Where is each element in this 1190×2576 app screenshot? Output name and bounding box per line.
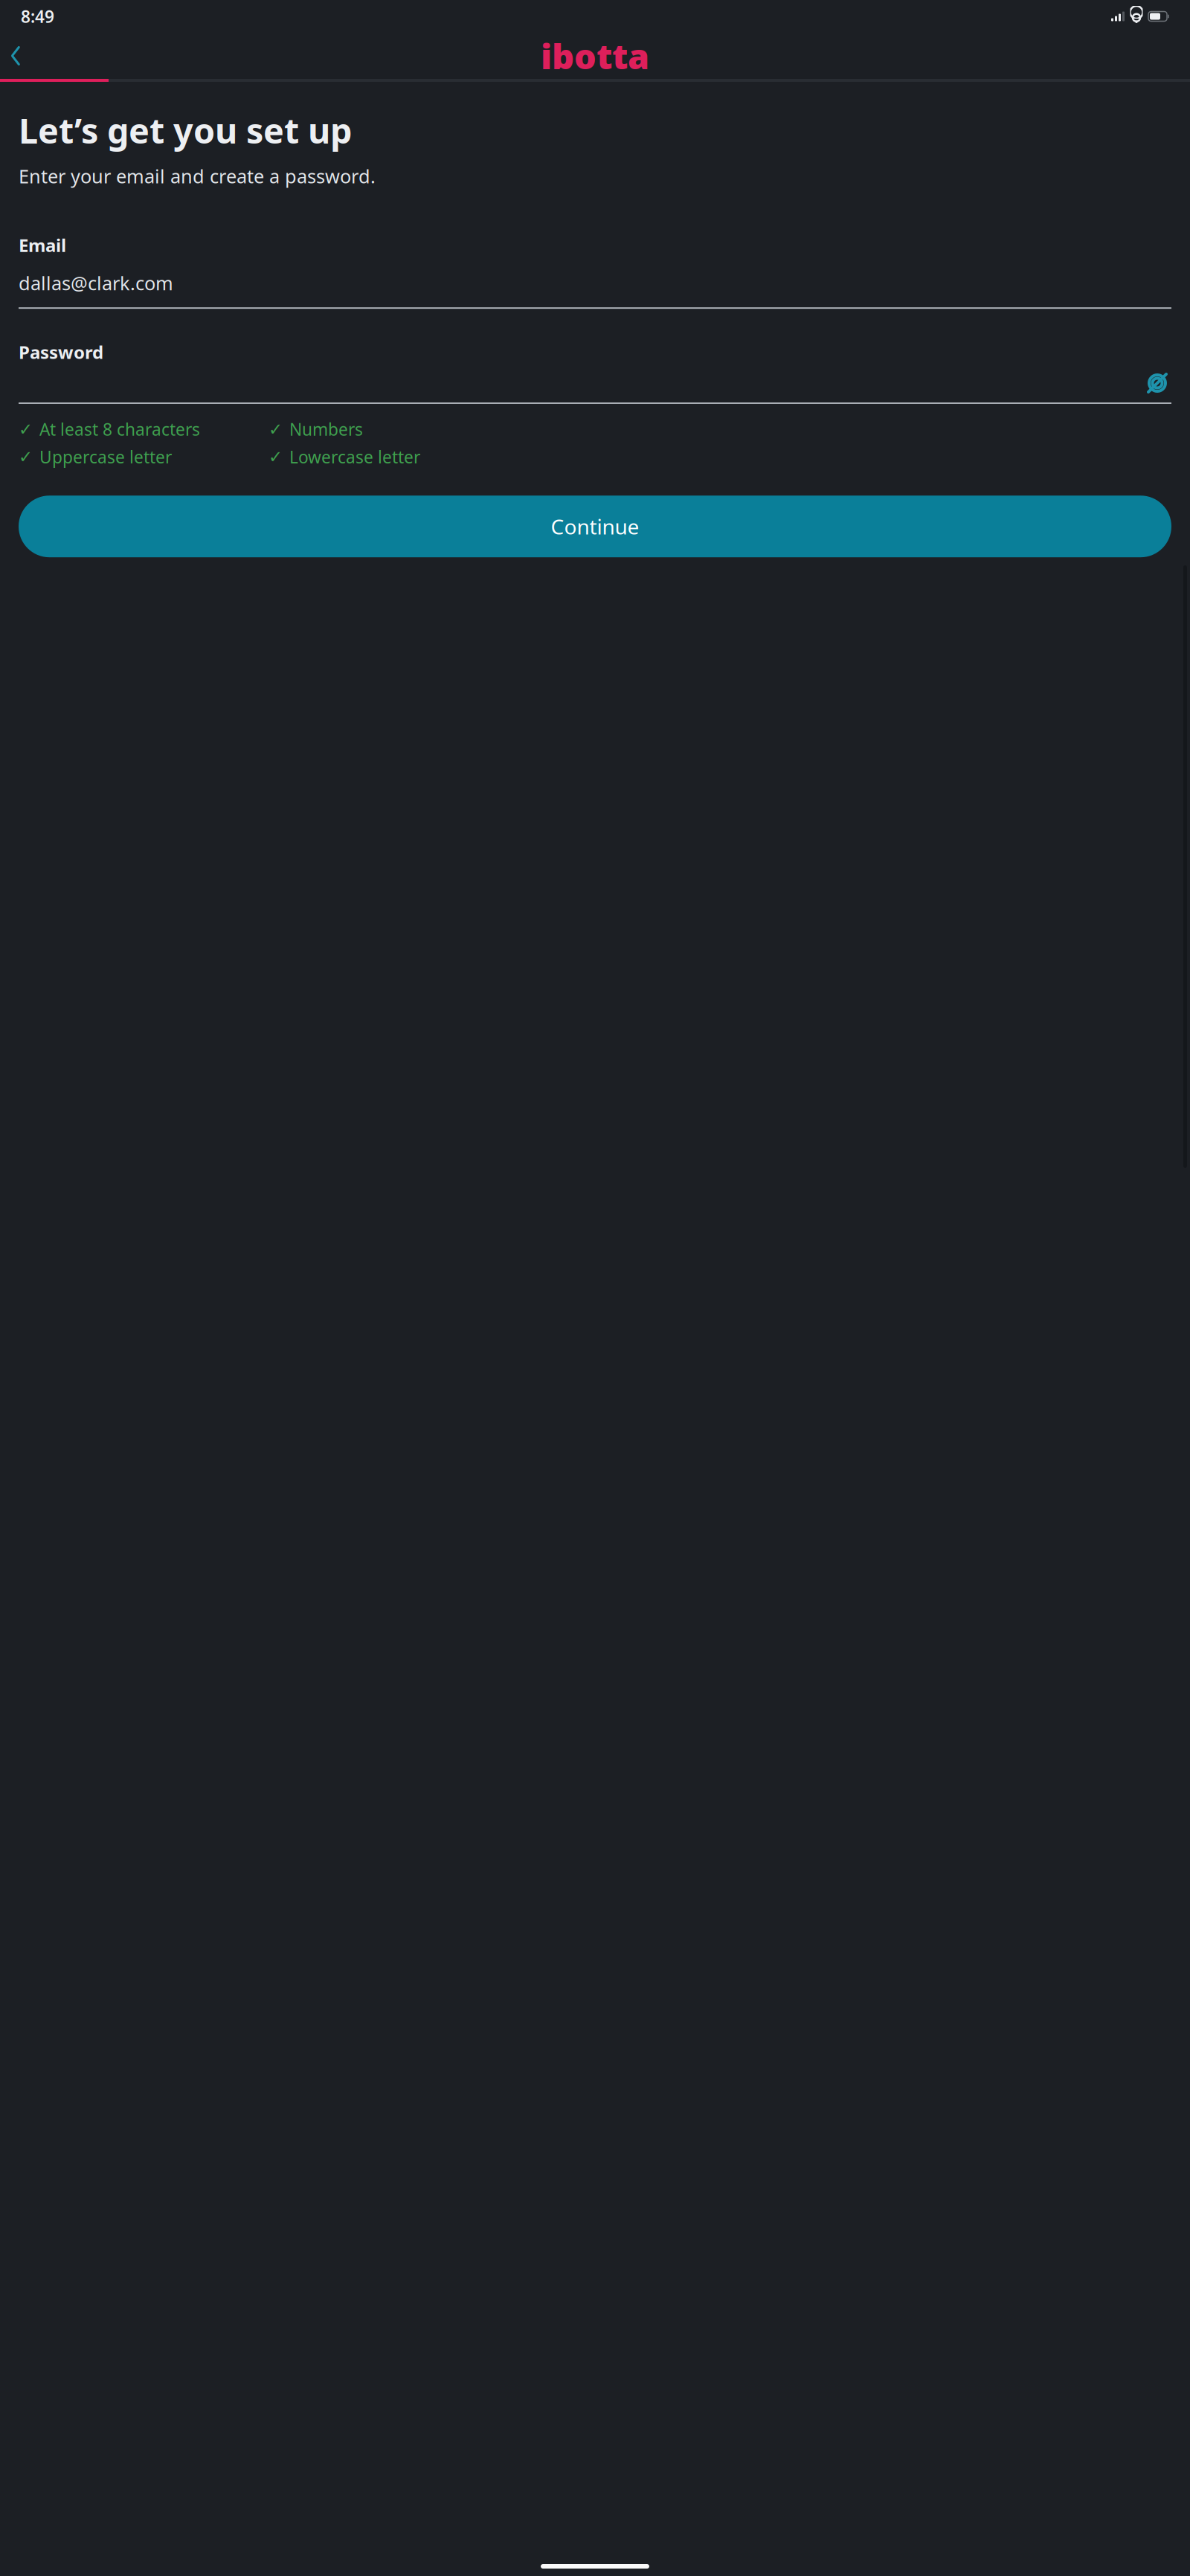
staticText: Let’s get you set up <box>19 107 352 153</box>
staticText: dallas@clark.com <box>19 270 173 295</box>
button[interactable]: dallas@clark.com <box>19 257 1171 309</box>
staticText: ✓ <box>19 447 33 466</box>
button[interactable]: Continue <box>19 496 1171 557</box>
staticText: Email <box>19 233 66 257</box>
staticText: 8:49 <box>21 5 54 28</box>
staticText: Password <box>19 340 103 364</box>
staticText: Lowercase letter <box>289 446 420 468</box>
staticText: Numbers <box>289 418 363 440</box>
staticText: Continue <box>551 513 639 540</box>
staticText: ibotta <box>541 33 649 79</box>
staticText: Enter your email and create a password. <box>19 164 376 189</box>
button[interactable]: Back <box>0 39 24 73</box>
button[interactable]: Show password <box>1133 367 1171 399</box>
staticText: ✓ <box>268 420 283 439</box>
staticText: ✓ <box>19 420 33 439</box>
staticText: Uppercase letter <box>39 446 172 468</box>
staticText: At least 8 characters <box>39 418 200 440</box>
staticText: ✓ <box>268 447 283 466</box>
